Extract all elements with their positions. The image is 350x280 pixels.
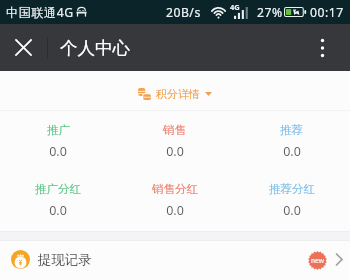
staticText: 00:17 [310, 4, 344, 21]
button[interactable]: 销售分红 [116, 171, 233, 231]
staticText: 0.0 [166, 143, 184, 160]
staticText: 27% [257, 4, 283, 21]
button[interactable]: Close [0, 24, 46, 71]
button[interactable]: 推荐 [233, 111, 350, 171]
staticText: 推广 [47, 123, 70, 137]
staticText: 4G [230, 2, 240, 12]
staticText: 0.0 [283, 202, 301, 219]
staticText: 推荐 [280, 123, 303, 137]
button[interactable]: 推荐分红 [233, 171, 350, 231]
staticText: 0.0 [49, 202, 67, 219]
staticText: 个人中心 [60, 37, 130, 59]
staticText: 销售 [163, 123, 186, 137]
button[interactable]: 提现记录 [0, 241, 350, 280]
staticText: 推荐分红 [269, 182, 315, 196]
button[interactable]: 销售 [116, 111, 233, 171]
staticText: 0.0 [283, 143, 301, 160]
staticText: 提现记录 [38, 251, 92, 268]
staticText: 积分详情 [156, 87, 200, 101]
staticText: new [311, 256, 324, 265]
staticText: 20B/s [166, 4, 201, 21]
staticText: 中国联通4G [6, 4, 74, 21]
button[interactable]: 推广 [0, 111, 116, 171]
staticText: 0.0 [166, 202, 184, 219]
button[interactable]: 推广分红 [0, 171, 116, 231]
staticText: 推广分红 [35, 182, 81, 196]
button[interactable]: 积分详情 [130, 81, 220, 107]
staticText: 0.0 [49, 143, 67, 160]
staticText: 销售分红 [152, 182, 198, 196]
button[interactable]: More options [299, 24, 345, 71]
